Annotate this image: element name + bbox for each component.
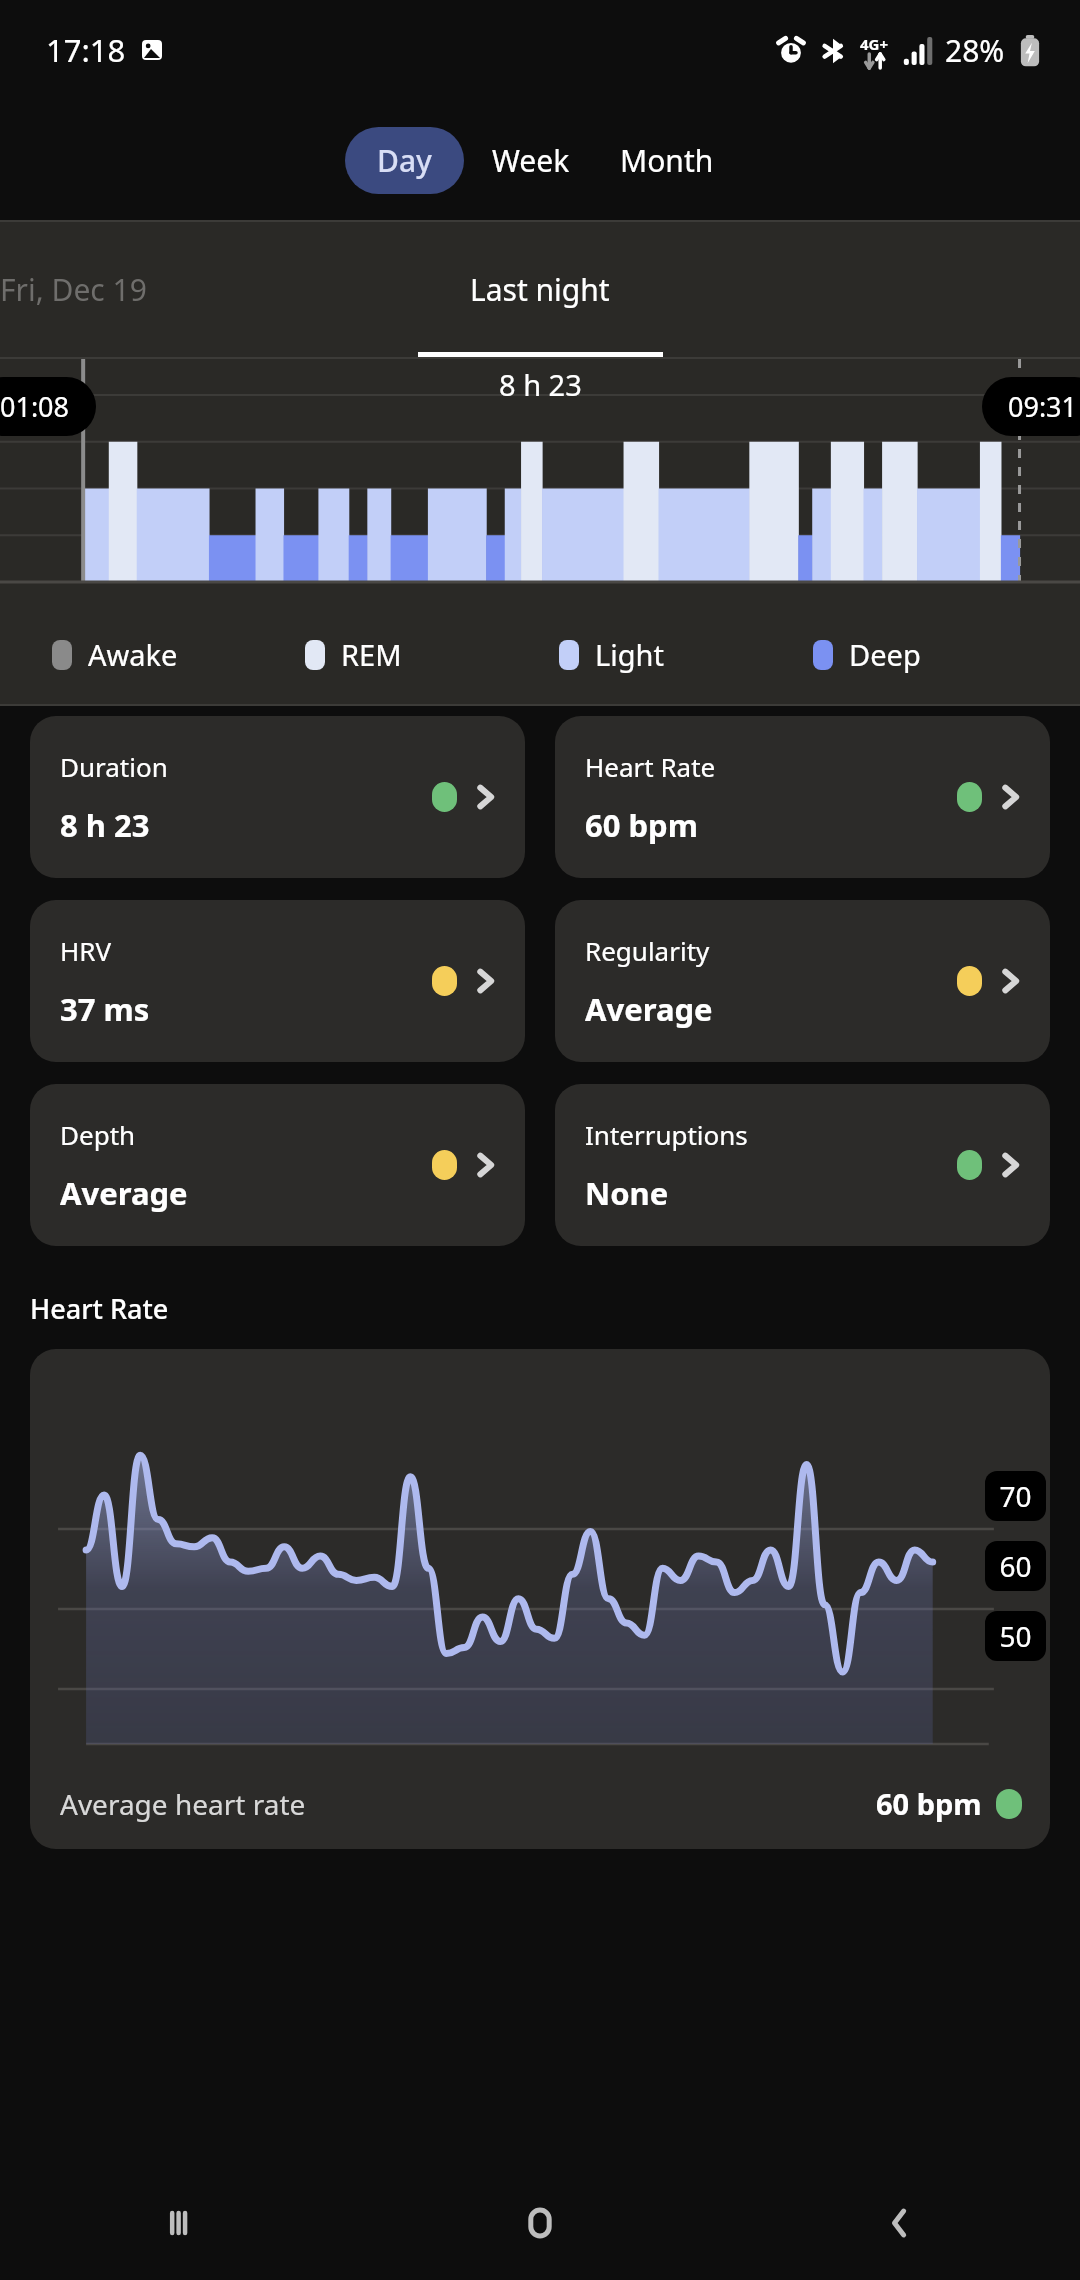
staticText: Light (595, 635, 664, 674)
staticText: Heart Rate (30, 1290, 169, 1327)
staticText: REM (341, 635, 402, 674)
staticText: 70 (999, 1477, 1032, 1515)
button[interactable]: Heart Rate (555, 716, 1050, 878)
staticText: 60 (999, 1547, 1032, 1585)
button[interactable]: Back (720, 2165, 1080, 2280)
staticText: 37 ms (60, 988, 150, 1030)
staticText: 50 (999, 1617, 1032, 1655)
staticText: Last night (470, 269, 610, 310)
button[interactable]: Month (598, 127, 736, 194)
button[interactable]: Last night (470, 269, 610, 310)
staticText: Interruptions (585, 1117, 748, 1152)
staticText: Average (60, 1172, 188, 1214)
button[interactable]: Recent apps (0, 2165, 360, 2280)
staticText: 28% (945, 30, 1005, 71)
staticText: 4G+ (860, 34, 889, 54)
staticText: Day (377, 140, 432, 181)
staticText: 60 bpm (585, 804, 698, 846)
button[interactable]: HRV (30, 900, 525, 1062)
staticText: HRV (60, 933, 112, 968)
staticText: Depth (60, 1117, 136, 1152)
staticText: Average heart rate (60, 1785, 306, 1823)
button[interactable]: Depth (30, 1084, 525, 1246)
button[interactable]: Home (360, 2165, 720, 2280)
staticText: 09:31 (1008, 388, 1078, 425)
button[interactable]: Interruptions (555, 1084, 1050, 1246)
staticText: Regularity (585, 933, 710, 968)
button[interactable]: Duration (30, 716, 525, 878)
button[interactable]: Week (464, 127, 598, 194)
staticText: Fri, Dec 19 (0, 269, 147, 310)
staticText: Heart Rate (585, 749, 716, 784)
staticText: Week (492, 140, 570, 181)
staticText: None (585, 1172, 669, 1214)
staticText: 17:18 (46, 29, 126, 71)
button[interactable]: Regularity (555, 900, 1050, 1062)
staticText: 8 h 23 (60, 804, 150, 846)
button[interactable]: Day (345, 127, 464, 194)
staticText: 01:08 (0, 388, 70, 425)
staticText: 60 bpm (876, 1784, 982, 1823)
staticText: Deep (849, 635, 921, 674)
staticText: Duration (60, 749, 168, 784)
staticText: 8 h 23 (499, 365, 582, 404)
staticText: Awake (88, 635, 178, 674)
staticText: Month (620, 140, 714, 181)
staticText: Average (585, 988, 713, 1030)
